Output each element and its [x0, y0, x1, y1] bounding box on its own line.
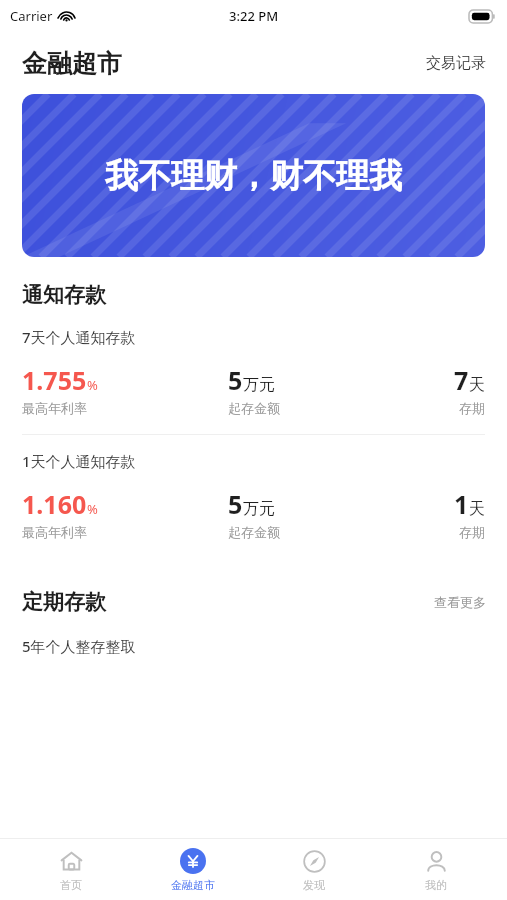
- staticText: 7天个人通知存款: [22, 327, 136, 347]
- staticText: 5: [228, 363, 243, 397]
- staticText: 存期: [459, 524, 485, 540]
- staticText: 5: [228, 487, 243, 521]
- button[interactable]: 我的: [386, 848, 486, 892]
- button[interactable]: 7天个人通知存款: [0, 327, 507, 434]
- staticText: 金融超市: [22, 48, 122, 79]
- button[interactable]: 我不理财，财不理我: [22, 94, 485, 257]
- staticText: 查看更多: [434, 594, 486, 610]
- button[interactable]: 查看更多: [413, 588, 507, 616]
- staticText: 万元: [243, 375, 275, 395]
- staticText: 天: [469, 499, 485, 519]
- staticText: 1.160: [22, 487, 87, 521]
- staticText: 最高年利率: [22, 524, 87, 540]
- button[interactable]: 1天个人通知存款: [0, 451, 507, 558]
- staticText: 通知存款: [22, 282, 106, 308]
- staticText: 7: [454, 363, 469, 397]
- staticText: 交易记录: [426, 54, 486, 73]
- staticText: 我不理财，财不理我: [105, 155, 402, 197]
- staticText: 1.755: [22, 363, 87, 397]
- button[interactable]: 金融超市: [143, 848, 243, 892]
- staticText: 万元: [243, 499, 275, 519]
- staticText: 存期: [459, 400, 485, 416]
- staticText: %: [87, 376, 98, 394]
- staticText: 1: [454, 487, 469, 521]
- staticText: 我的: [425, 878, 447, 892]
- staticText: 首页: [60, 878, 82, 892]
- staticText: 发现: [303, 878, 325, 892]
- staticText: 5年个人整存整取: [22, 636, 136, 656]
- staticText: 起存金额: [228, 400, 280, 416]
- staticText: Carrier: [10, 7, 53, 25]
- button[interactable]: 发现: [264, 848, 364, 892]
- button[interactable]: 首页: [21, 848, 121, 892]
- button[interactable]: 交易记录: [405, 46, 507, 81]
- staticText: 1天个人通知存款: [22, 451, 136, 471]
- staticText: 天: [469, 375, 485, 395]
- staticText: 起存金额: [228, 524, 280, 540]
- staticText: 最高年利率: [22, 400, 87, 416]
- staticText: 定期存款: [22, 589, 106, 615]
- staticText: 3:22 PM: [229, 7, 279, 25]
- staticText: 金融超市: [171, 878, 215, 892]
- staticText: %: [87, 500, 98, 518]
